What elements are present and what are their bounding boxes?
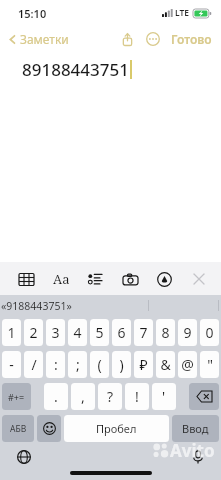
button[interactable]: 7 <box>134 319 153 346</box>
button[interactable]: ; <box>68 351 87 378</box>
button[interactable]: 9 <box>178 319 197 346</box>
staticText: , <box>81 387 85 406</box>
staticText: ; <box>76 355 80 374</box>
staticText: Готово <box>171 31 212 47</box>
button[interactable]: / <box>24 351 43 378</box>
staticText: 5 <box>95 323 104 342</box>
button[interactable]: Camera <box>118 267 142 291</box>
button[interactable]: " <box>200 351 219 378</box>
button[interactable]: Checklist <box>83 267 107 291</box>
staticText: ' <box>162 387 166 406</box>
button[interactable]: 5 <box>90 319 109 346</box>
staticText: @ <box>181 355 194 374</box>
staticText: 89188443751 <box>22 58 129 81</box>
staticText: 9 <box>183 323 192 342</box>
button[interactable]: #+= <box>2 383 31 410</box>
button[interactable]: 4 <box>68 319 87 346</box>
staticText: : <box>54 355 58 374</box>
staticText: 0 <box>205 323 214 342</box>
button[interactable]: Share <box>117 29 137 49</box>
button[interactable]: Ввод <box>172 415 219 442</box>
staticText: #+= <box>8 391 25 403</box>
button[interactable]: Backspace <box>189 383 219 410</box>
staticText: ? <box>107 387 114 406</box>
button[interactable]: Markup <box>152 267 176 291</box>
button[interactable]: Готово <box>169 31 214 47</box>
button[interactable]: 1 <box>2 319 21 346</box>
button[interactable]: , <box>71 383 95 410</box>
staticText: " <box>207 355 213 374</box>
button[interactable]: & <box>156 351 175 378</box>
button[interactable]: ( <box>90 351 109 378</box>
button[interactable]: Dictation <box>188 447 208 467</box>
staticText: Ввод <box>182 421 209 436</box>
button[interactable]: ₽ <box>134 351 153 378</box>
staticText: Aa <box>53 270 70 288</box>
staticText: - <box>9 355 14 374</box>
staticText: ! <box>135 387 139 406</box>
staticText: 4 <box>73 323 82 342</box>
staticText: «9188443751» <box>1 299 72 313</box>
button[interactable]: ! <box>125 383 149 410</box>
staticText: . <box>54 387 58 406</box>
button[interactable]: Close <box>187 267 211 291</box>
button[interactable]: АБВ <box>2 415 34 442</box>
button[interactable]: 8 <box>156 319 175 346</box>
staticText: ₽ <box>139 355 148 374</box>
button[interactable]: . <box>44 383 68 410</box>
button[interactable]: Emoji <box>37 415 61 442</box>
staticText: Пробел <box>96 421 137 436</box>
button[interactable]: Пробел <box>64 415 169 442</box>
staticText: 3 <box>51 323 60 342</box>
button[interactable]: - <box>2 351 21 378</box>
button[interactable]: Text format <box>49 267 73 291</box>
button[interactable]: 0 <box>200 319 219 346</box>
staticText: АБВ <box>10 423 27 435</box>
button[interactable]: 6 <box>112 319 131 346</box>
button[interactable]: 3 <box>46 319 65 346</box>
staticText: 8 <box>161 323 170 342</box>
button[interactable]: Заметки <box>7 31 69 47</box>
staticText: 7 <box>139 323 148 342</box>
staticText: / <box>31 355 37 374</box>
staticText: ( <box>97 355 102 374</box>
staticText: 2 <box>29 323 38 342</box>
button[interactable]: @ <box>178 351 197 378</box>
staticText: 1 <box>7 323 16 342</box>
staticText: ) <box>119 355 124 374</box>
button[interactable]: Table <box>14 267 38 291</box>
button[interactable]: ? <box>98 383 122 410</box>
button[interactable]: : <box>46 351 65 378</box>
staticText: Заметки <box>20 31 69 47</box>
button[interactable]: ' <box>152 383 176 410</box>
staticText: 15:10 <box>18 6 47 21</box>
button[interactable]: More <box>143 29 163 49</box>
button[interactable]: Change keyboard <box>14 447 34 467</box>
button[interactable]: ) <box>112 351 131 378</box>
staticText: & <box>160 355 171 374</box>
button[interactable]: 2 <box>24 319 43 346</box>
staticText: 6 <box>117 323 126 342</box>
staticText: Avito <box>170 439 215 462</box>
staticText: LTE <box>175 7 190 19</box>
